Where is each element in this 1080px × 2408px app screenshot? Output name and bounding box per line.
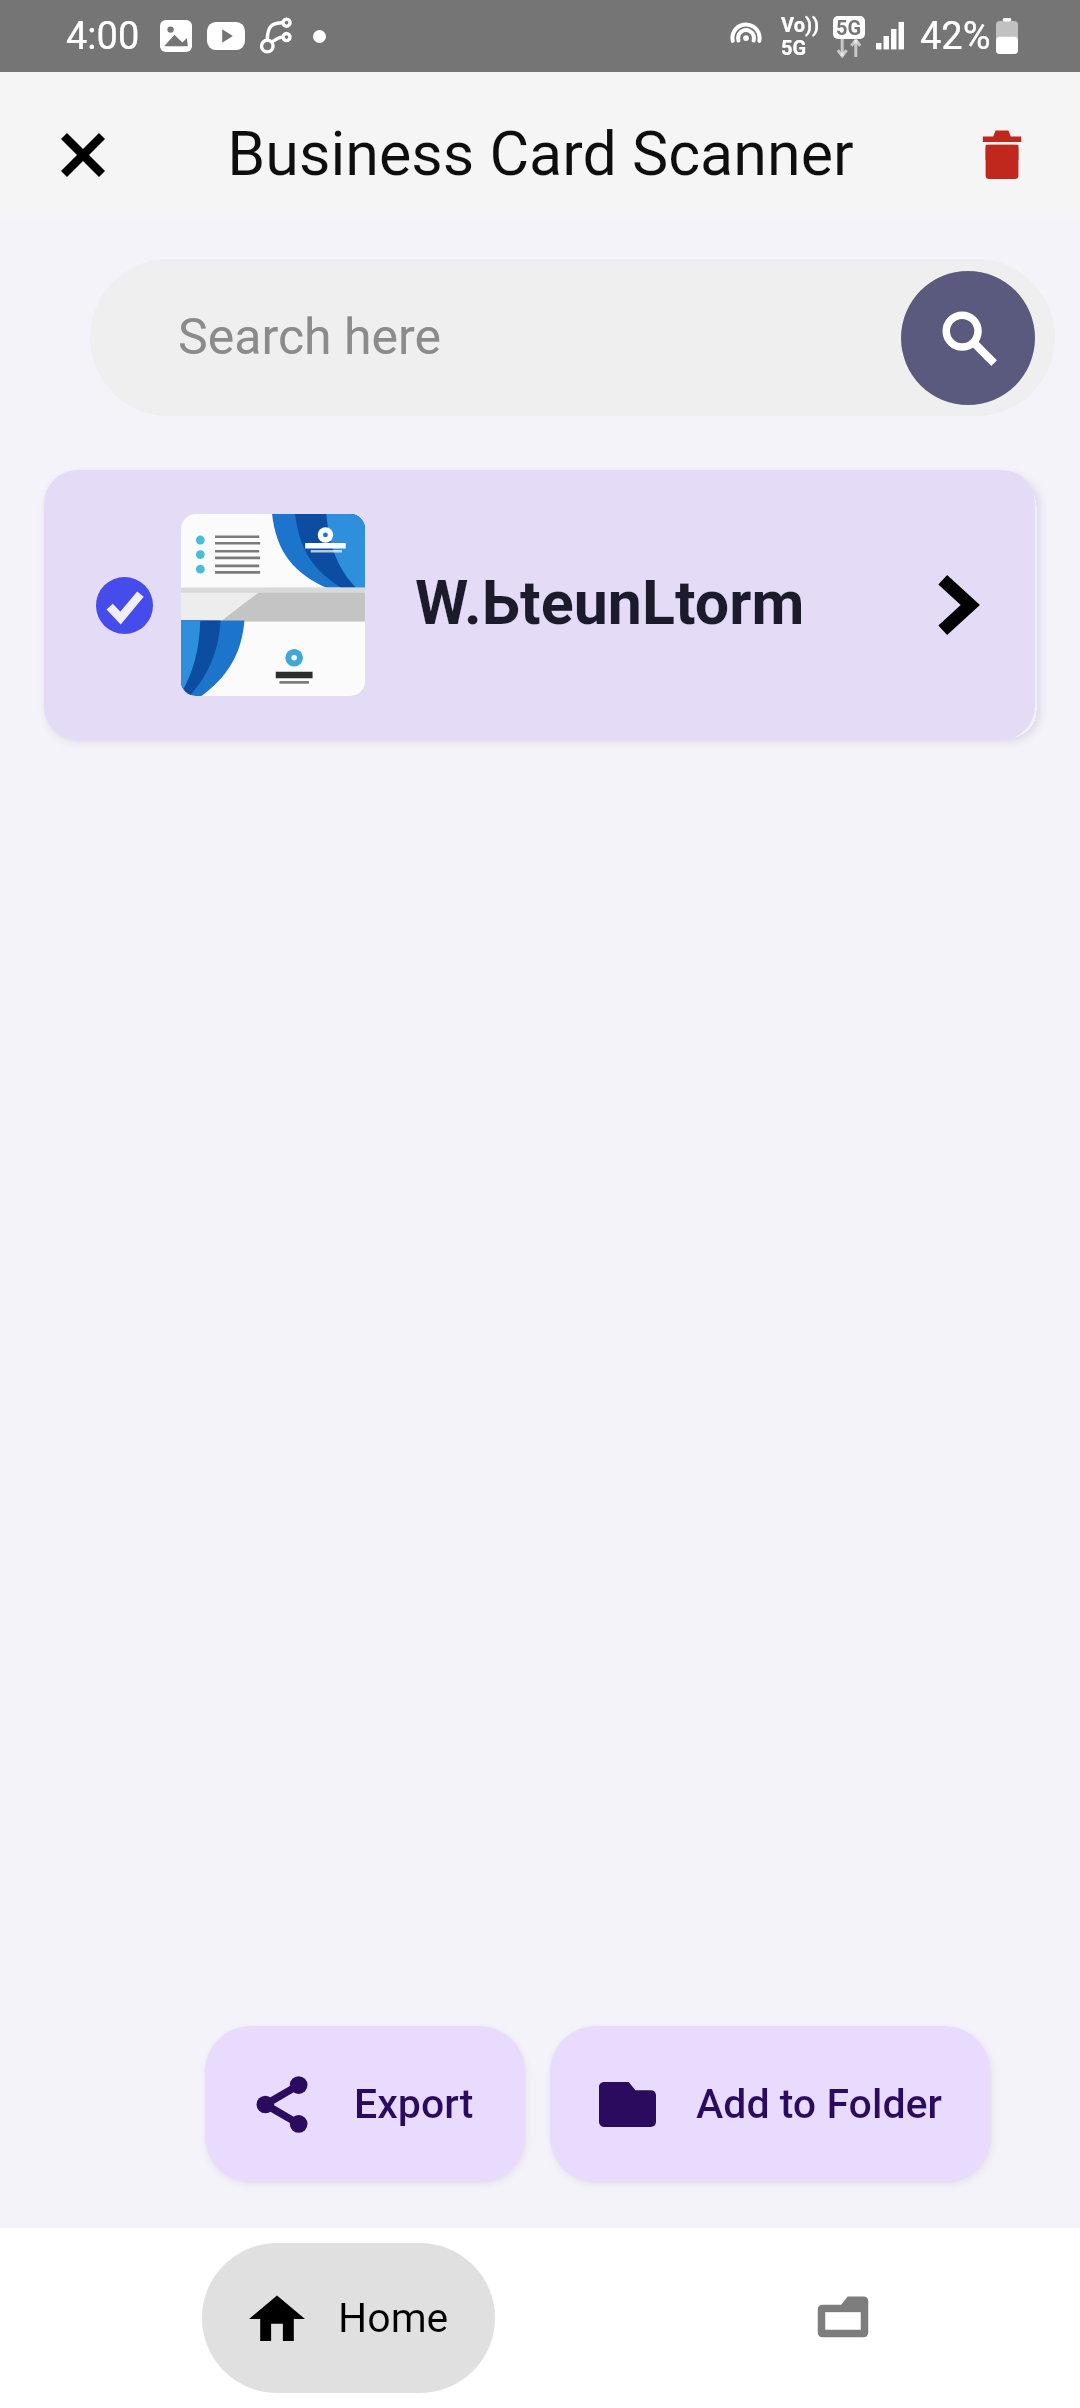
staticText: 4:00 [66,14,140,59]
button[interactable]: Delete [959,111,1045,197]
staticText: Business Card Scanner [227,118,854,189]
button[interactable]: Search [901,271,1035,405]
button[interactable]: Search here [90,259,1055,416]
staticText: Add to Folder [696,2080,942,2128]
staticText: 5G [781,36,807,59]
staticText: 5G [836,16,862,39]
button[interactable]: Close [38,110,128,200]
button[interactable]: Export [205,2026,525,2182]
button[interactable]: Folders [783,2258,903,2378]
button[interactable]: Home [202,2243,495,2393]
button[interactable]: Add to Folder [550,2026,990,2182]
staticText: Export [354,2080,474,2128]
staticText: W.ЬteunLtorm [415,567,805,638]
staticText: Search here [178,308,442,367]
staticText: 42% [920,14,991,59]
staticText: Home [338,2294,449,2342]
staticText: Vo)) [781,13,820,36]
button[interactable]: W.ЬteunLtorm [44,470,1035,740]
